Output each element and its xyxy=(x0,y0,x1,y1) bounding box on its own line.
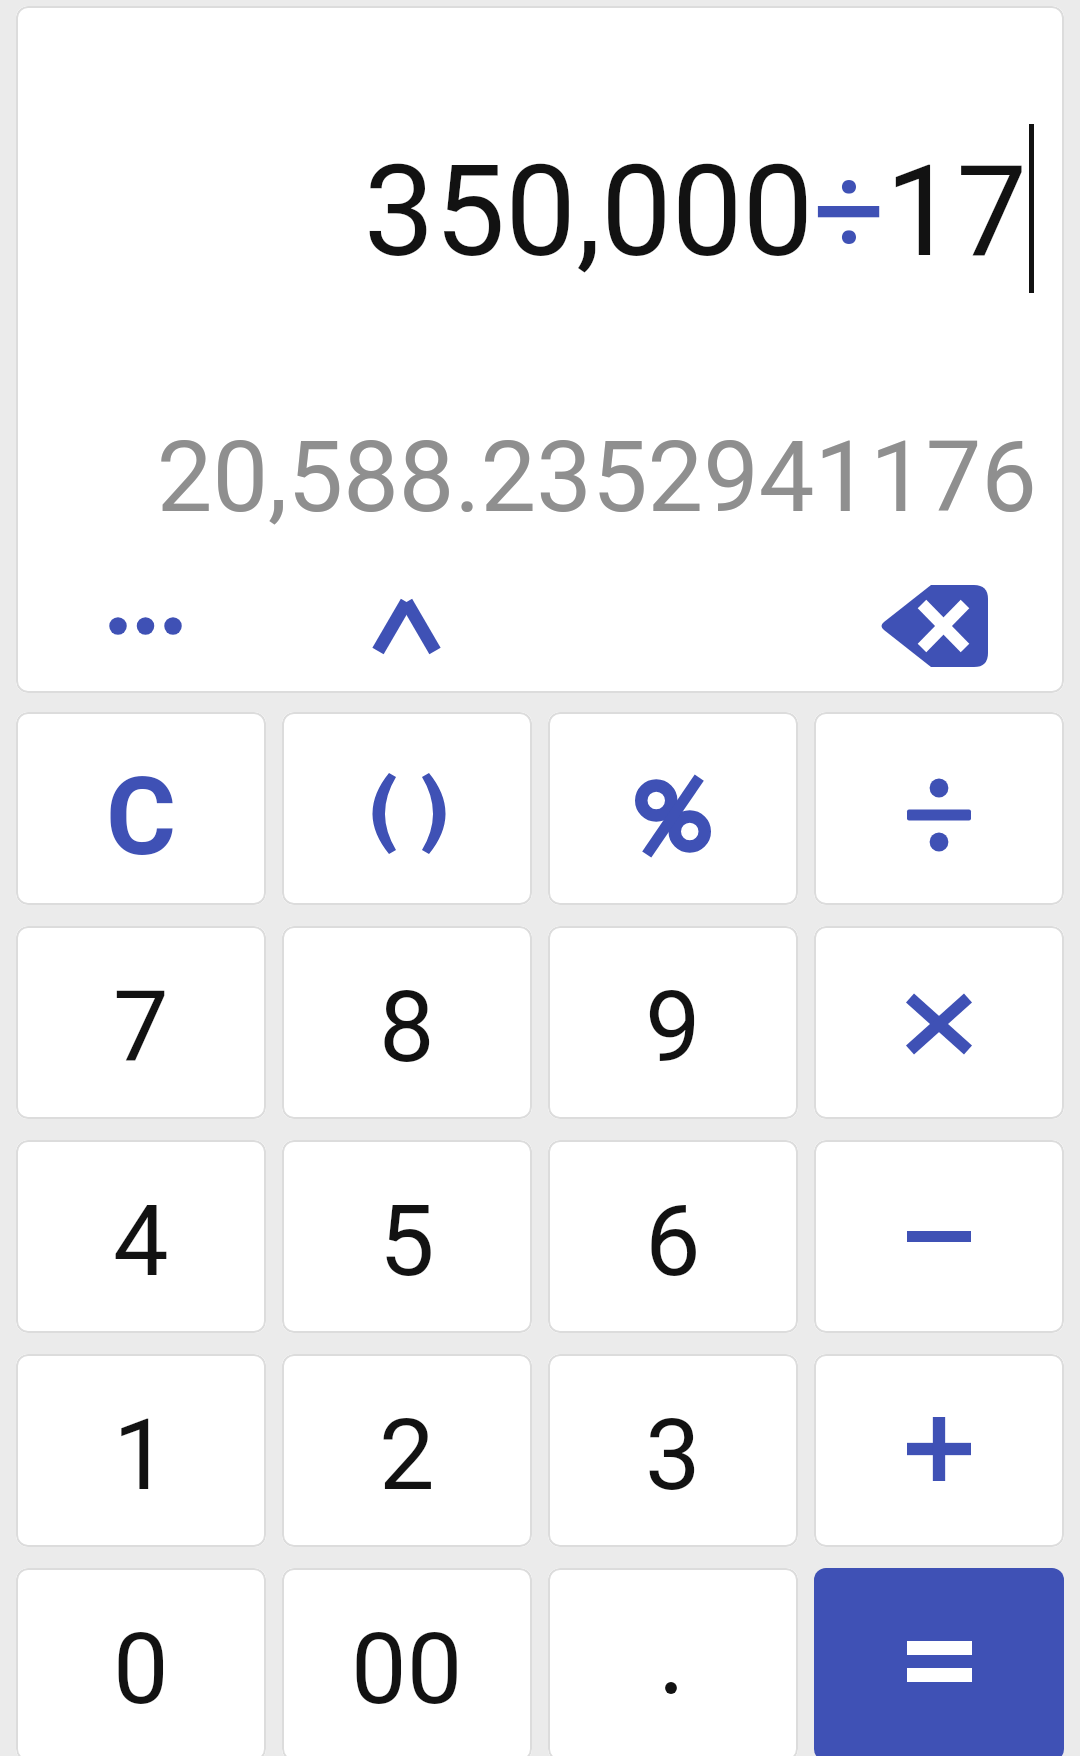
button[interactable] xyxy=(548,712,798,905)
button[interactable] xyxy=(879,585,988,667)
button[interactable]: 00 xyxy=(282,1568,532,1756)
staticText: 0 xyxy=(113,1611,169,1727)
button[interactable]: 1 xyxy=(16,1354,266,1547)
staticText: 7 xyxy=(113,969,169,1085)
staticText: 2 xyxy=(379,1397,435,1513)
staticText: 9 xyxy=(645,969,701,1085)
button[interactable] xyxy=(814,1354,1064,1547)
staticText: 1 xyxy=(113,1397,169,1513)
button[interactable]: C xyxy=(16,712,266,905)
button[interactable]: 9 xyxy=(548,926,798,1119)
staticText: 00 xyxy=(351,1611,463,1727)
staticText: 20,588.2352941176 xyxy=(0,419,1037,535)
staticText: 6 xyxy=(645,1183,701,1299)
button[interactable] xyxy=(814,1140,1064,1333)
button[interactable]: 6 xyxy=(548,1140,798,1333)
staticText: 350,000÷17 xyxy=(0,138,1027,286)
button[interactable]: 3 xyxy=(548,1354,798,1547)
button[interactable] xyxy=(548,1568,798,1756)
button[interactable] xyxy=(282,712,532,905)
button[interactable]: 5 xyxy=(282,1140,532,1333)
button[interactable]: 7 xyxy=(16,926,266,1119)
button[interactable]: 2 xyxy=(282,1354,532,1547)
button[interactable]: 4 xyxy=(16,1140,266,1333)
staticText: 3 xyxy=(645,1397,701,1513)
staticText: 5 xyxy=(379,1183,435,1299)
button[interactable]: 8 xyxy=(282,926,532,1119)
button[interactable] xyxy=(814,926,1064,1119)
button[interactable] xyxy=(814,712,1064,905)
button[interactable] xyxy=(95,600,191,652)
staticText: 8 xyxy=(379,969,435,1085)
button[interactable] xyxy=(368,592,446,662)
button[interactable] xyxy=(814,1568,1064,1756)
button[interactable]: 0 xyxy=(16,1568,266,1756)
staticText: C xyxy=(106,755,177,880)
staticText: 4 xyxy=(113,1183,169,1299)
